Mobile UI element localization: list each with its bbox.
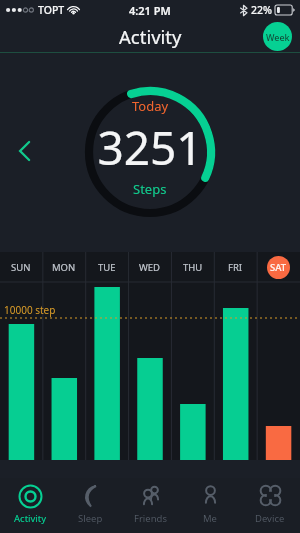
staticText: Sleep [78, 512, 103, 525]
button[interactable]: Sleep [60, 478, 120, 533]
staticText: Device [255, 512, 285, 525]
staticText: 3251 [97, 116, 203, 179]
staticText: FRI [228, 261, 243, 274]
button[interactable]: FRI [214, 252, 257, 282]
button[interactable]: Activity [0, 478, 60, 533]
button[interactable]: Me [180, 478, 240, 533]
staticText: TOPT [38, 3, 65, 17]
staticText: 4:21 PM [129, 3, 171, 18]
staticText: SAT [270, 261, 287, 274]
button[interactable]: SUN [0, 252, 42, 282]
staticText: MON [52, 261, 76, 274]
staticText: Week [266, 31, 290, 43]
staticText: Friends [134, 512, 167, 525]
staticText: Me [203, 512, 217, 525]
button[interactable]: Friends [120, 478, 180, 533]
button[interactable]: Week [263, 22, 292, 51]
staticText: Steps [133, 180, 167, 198]
button[interactable]: SAT [257, 252, 300, 282]
button[interactable]: MON [42, 252, 85, 282]
staticText: 10000 step [4, 303, 56, 317]
staticText: SUN [11, 261, 31, 274]
staticText: WED [139, 261, 161, 274]
staticText: Today [132, 97, 169, 115]
button[interactable]: THU [171, 252, 214, 282]
staticText: 22% [251, 3, 272, 17]
staticText: THU [183, 261, 203, 274]
button[interactable]: WED [128, 252, 171, 282]
staticText: Activity [119, 24, 182, 49]
button[interactable]: Previous day [8, 135, 40, 167]
staticText: Activity [14, 512, 47, 525]
staticText: TUE [98, 261, 116, 274]
button[interactable]: Device [240, 478, 300, 533]
button[interactable]: TUE [85, 252, 128, 282]
